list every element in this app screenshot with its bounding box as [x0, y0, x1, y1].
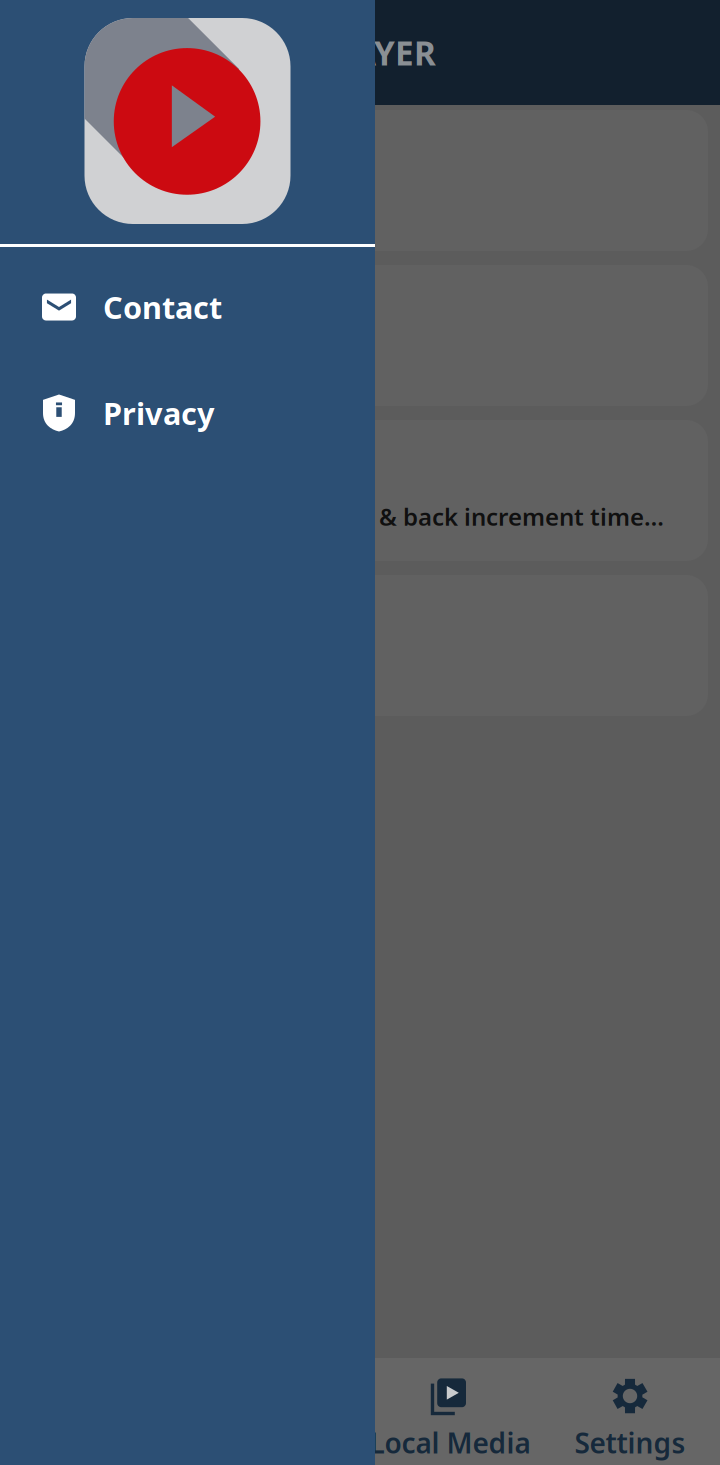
- button[interactable]: [12, 110, 708, 251]
- button[interactable]: Fast forward & back increment time…: [12, 420, 708, 561]
- button[interactable]: Contact: [0, 254, 375, 360]
- staticText: VIDEO PLAYER: [200, 30, 436, 75]
- button[interactable]: Privacy: [0, 360, 375, 466]
- staticText: Settings: [574, 1424, 685, 1461]
- button[interactable]: [12, 575, 708, 716]
- button[interactable]: [12, 265, 708, 406]
- staticText: Privacy: [103, 393, 215, 433]
- staticText: Local Media: [369, 1424, 530, 1461]
- staticText: Contact: [103, 287, 222, 327]
- staticText: Fast forward & back increment time…: [225, 501, 664, 532]
- button[interactable]: Local Media: [360, 1358, 540, 1465]
- button[interactable]: Settings: [540, 1358, 720, 1465]
